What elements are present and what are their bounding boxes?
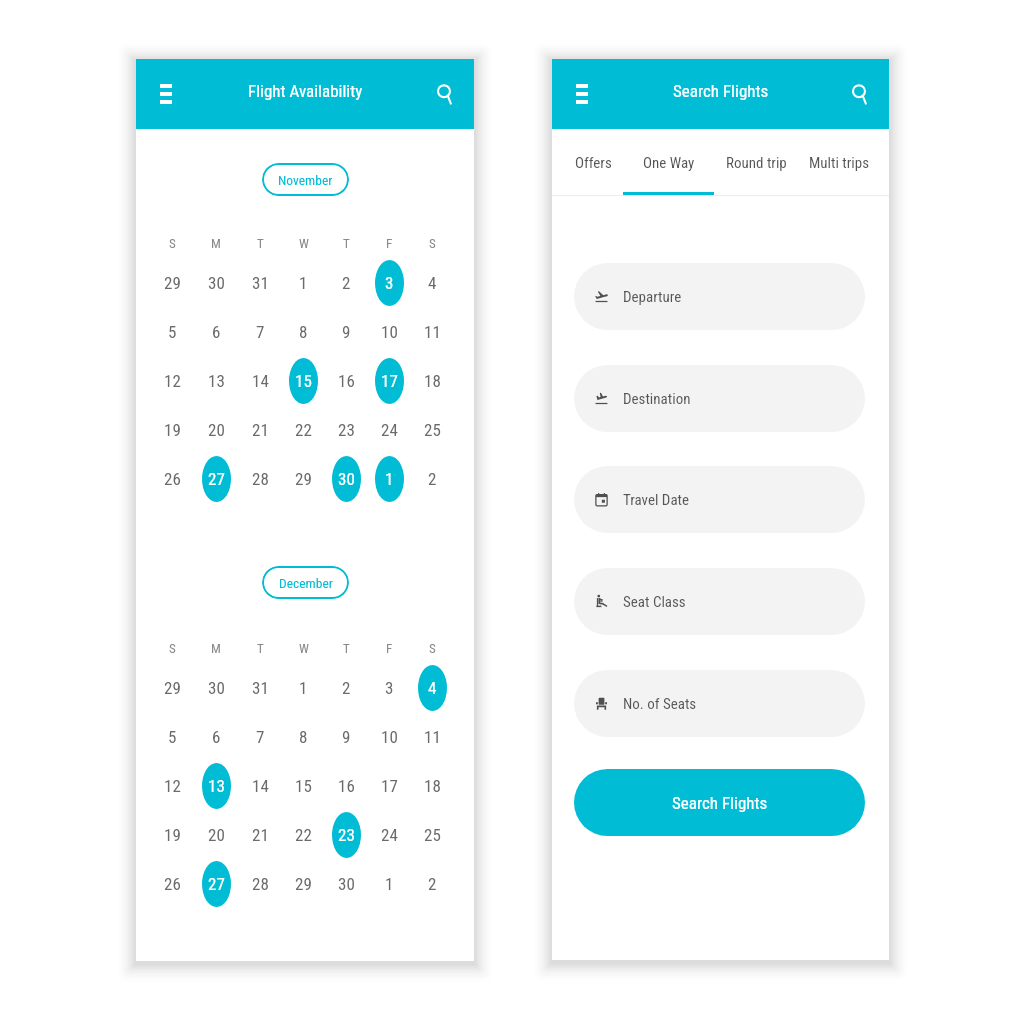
button[interactable]: 2 [418, 456, 447, 502]
button[interactable]: 21 [246, 407, 275, 453]
button[interactable]: 1 [375, 861, 404, 907]
button[interactable]: 2 [332, 665, 361, 711]
button[interactable]: 3 [375, 260, 404, 306]
button[interactable]: 12 [158, 358, 187, 404]
button[interactable]: Travel Date [574, 466, 865, 533]
button[interactable]: Destination [574, 365, 865, 432]
button[interactable]: 8 [289, 714, 318, 760]
button[interactable]: 24 [375, 407, 404, 453]
button[interactable]: 15 [289, 763, 318, 809]
button[interactable]: 27 [202, 456, 231, 502]
button[interactable]: 10 [375, 714, 404, 760]
staticText: 11 [424, 727, 441, 747]
button[interactable]: Open navigation menu [145, 73, 187, 115]
button[interactable]: 4 [418, 665, 447, 711]
staticText: S [429, 641, 436, 656]
button[interactable]: 24 [375, 812, 404, 858]
staticText: 17 [381, 776, 398, 796]
button[interactable]: 28 [246, 456, 275, 502]
button[interactable]: 3 [375, 665, 404, 711]
button[interactable]: 16 [332, 358, 361, 404]
button[interactable]: 14 [246, 358, 275, 404]
button[interactable]: 28 [246, 861, 275, 907]
button[interactable]: 11 [418, 309, 447, 355]
button[interactable]: Round trip [710, 129, 802, 196]
button[interactable]: No. of Seats [574, 670, 865, 737]
button[interactable]: 19 [158, 407, 187, 453]
button[interactable]: 16 [332, 763, 361, 809]
button[interactable]: 30 [332, 456, 361, 502]
button[interactable]: 10 [375, 309, 404, 355]
button[interactable]: 2 [332, 260, 361, 306]
button[interactable]: 1 [289, 665, 318, 711]
button[interactable]: 5 [158, 309, 187, 355]
button[interactable]: 13 [202, 763, 231, 809]
button[interactable]: Offers [558, 129, 628, 196]
button[interactable]: 25 [418, 407, 447, 453]
button[interactable]: 18 [418, 763, 447, 809]
staticText: T [257, 236, 264, 251]
button[interactable]: 19 [158, 812, 187, 858]
button[interactable]: 29 [158, 665, 187, 711]
button[interactable]: Search [838, 73, 880, 115]
button[interactable]: 17 [375, 763, 404, 809]
button[interactable]: Seat Class [574, 568, 865, 635]
staticText: 1 [385, 469, 394, 489]
staticText: Seat Class [623, 593, 686, 611]
button[interactable]: 20 [202, 812, 231, 858]
button[interactable]: Open navigation menu [561, 73, 603, 115]
button[interactable]: 15 [289, 358, 318, 404]
staticText: W [299, 641, 309, 656]
button[interactable]: 20 [202, 407, 231, 453]
button[interactable]: 12 [158, 763, 187, 809]
button[interactable]: 7 [246, 309, 275, 355]
button[interactable]: 23 [332, 407, 361, 453]
staticText: 25 [424, 825, 441, 845]
button[interactable]: November [262, 163, 349, 196]
staticText: Flight Availability [248, 81, 363, 101]
button[interactable]: Multi trips [802, 129, 876, 196]
button[interactable]: 30 [202, 665, 231, 711]
button[interactable]: 30 [332, 861, 361, 907]
button[interactable]: 31 [246, 665, 275, 711]
button[interactable]: 26 [158, 861, 187, 907]
staticText: 10 [381, 727, 398, 747]
button[interactable]: 14 [246, 763, 275, 809]
button[interactable]: 23 [332, 812, 361, 858]
staticText: Search Flights [673, 81, 769, 101]
button[interactable]: 26 [158, 456, 187, 502]
button[interactable]: 13 [202, 358, 231, 404]
staticText: Offers [575, 154, 612, 172]
button[interactable]: 2 [418, 861, 447, 907]
button[interactable]: 30 [202, 260, 231, 306]
button[interactable]: 31 [246, 260, 275, 306]
button[interactable]: 17 [375, 358, 404, 404]
button[interactable]: 29 [289, 861, 318, 907]
button[interactable]: 7 [246, 714, 275, 760]
button[interactable]: 27 [202, 861, 231, 907]
button[interactable]: 22 [289, 407, 318, 453]
button[interactable]: 9 [332, 309, 361, 355]
button[interactable]: 9 [332, 714, 361, 760]
button[interactable]: 8 [289, 309, 318, 355]
button[interactable]: Search Flights [574, 769, 865, 836]
button[interactable]: 1 [289, 260, 318, 306]
button[interactable]: 11 [418, 714, 447, 760]
button[interactable]: 5 [158, 714, 187, 760]
button[interactable]: 22 [289, 812, 318, 858]
button[interactable]: December [262, 566, 349, 599]
button[interactable]: 6 [202, 309, 231, 355]
button[interactable]: 25 [418, 812, 447, 858]
button[interactable]: 1 [375, 456, 404, 502]
button[interactable]: Departure [574, 263, 865, 330]
button[interactable]: 18 [418, 358, 447, 404]
staticText: 13 [208, 776, 225, 796]
button[interactable]: Search [423, 73, 465, 115]
button[interactable]: 29 [289, 456, 318, 502]
staticText: 19 [164, 825, 181, 845]
button[interactable]: One Way [628, 129, 710, 196]
button[interactable]: 29 [158, 260, 187, 306]
button[interactable]: 21 [246, 812, 275, 858]
button[interactable]: 4 [418, 260, 447, 306]
button[interactable]: 6 [202, 714, 231, 760]
